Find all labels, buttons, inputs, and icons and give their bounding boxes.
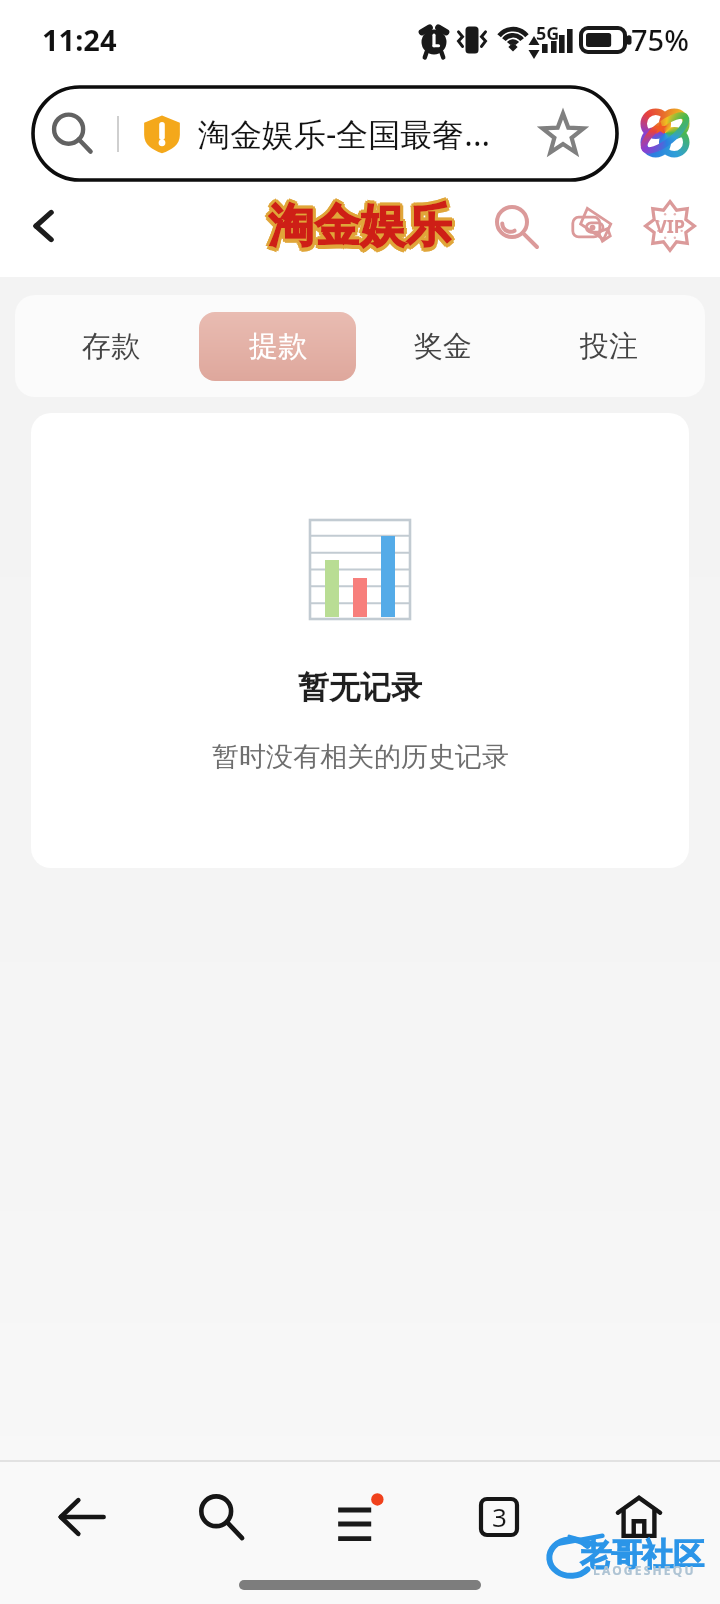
button[interactable]: 提款 [199,312,356,381]
button[interactable]: Menu [315,1472,405,1562]
button[interactable]: Browser home [637,105,693,161]
staticText: 淘金娱乐 [268,202,452,259]
staticText: 提款 [249,328,307,365]
staticText: 淘金娱乐 [266,201,450,258]
button[interactable]: 淘金娱乐-全国最奢... [33,87,617,180]
staticText: 5G [536,21,560,46]
staticText: LAOGESHEQU [593,1562,696,1578]
button[interactable]: VIP [642,198,698,254]
staticText: 淘金娱乐 [270,201,454,258]
button[interactable]: 奖金 [364,312,521,381]
staticText: 存款 [82,328,140,365]
button[interactable]: Search [487,198,543,254]
button[interactable]: 存款 [32,312,189,381]
staticText: 淘金娱乐 [265,198,449,255]
staticText: VIP [655,214,685,239]
button[interactable]: Search [176,1472,266,1562]
staticText: 75% [631,20,689,59]
staticText: 老哥社区 [580,1535,704,1574]
staticText: 11:24 [42,20,117,59]
button[interactable]: Home [594,1472,684,1562]
staticText: 3 [492,1499,507,1534]
staticText: 奖金 [414,328,472,365]
staticText: 淘金娱乐 [270,196,454,253]
button[interactable]: Wallet [563,198,619,254]
button[interactable]: Tabs [454,1472,544,1562]
button[interactable]: 投注 [530,312,687,381]
button[interactable]: Back [37,1472,127,1562]
staticText: 淘金娱乐 [268,195,452,252]
staticText: 暂无记录 [298,668,422,707]
staticText: 淘金娱乐-全国最奢... [198,112,491,156]
staticText: 投注 [580,328,638,365]
staticText: 淘金娱乐 [266,196,450,253]
staticText: 暂时没有相关的历史记录 [212,740,509,774]
staticText: 淘金娱乐 [271,198,455,255]
button[interactable]: Back [16,198,72,254]
staticText: 淘金娱乐 [268,198,452,255]
